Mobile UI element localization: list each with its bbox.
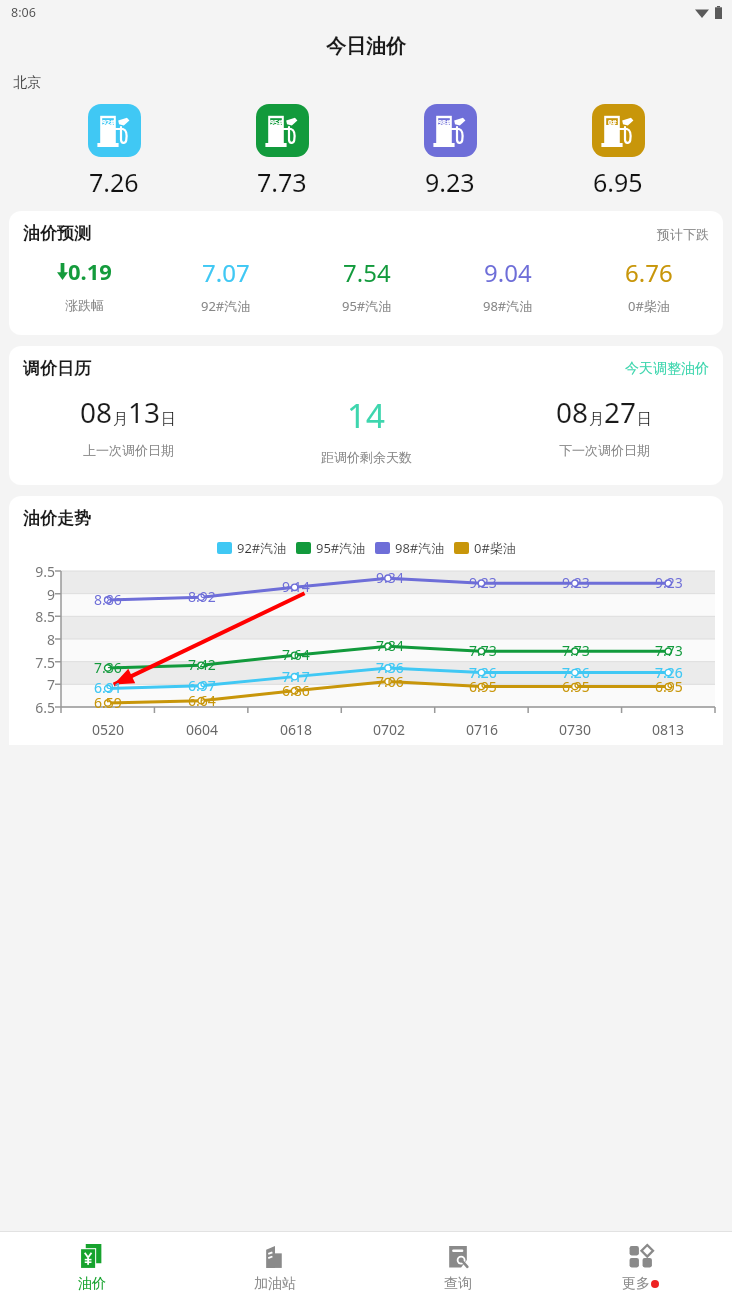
staticText: 7.64 xyxy=(282,645,310,664)
staticText: 6.95 xyxy=(593,165,643,199)
staticText: 油价 xyxy=(78,1275,106,1293)
staticText: 7.36 xyxy=(94,658,122,677)
other: 查询 xyxy=(445,1244,471,1270)
staticText: 7.26 xyxy=(89,165,139,199)
staticText: 月 xyxy=(589,410,604,429)
staticText: 0.19 xyxy=(68,256,112,286)
staticText: 7.26 xyxy=(655,663,683,682)
staticText: 上一次调价日期 xyxy=(83,442,174,458)
staticText: 6.64 xyxy=(188,691,216,710)
staticText: 8.92 xyxy=(188,587,216,606)
staticText: 7.17 xyxy=(282,667,310,686)
staticText: 0#柴油 xyxy=(628,297,670,315)
staticText: 95#汽油 xyxy=(316,539,366,557)
staticText: 7.73 xyxy=(257,165,307,199)
staticText: 7.26 xyxy=(562,663,590,682)
button[interactable]: 0# xyxy=(558,104,678,199)
staticText: 0618 xyxy=(280,720,313,739)
staticText: 6.95 xyxy=(655,677,683,696)
staticText: 距调价剩余天数 xyxy=(321,449,412,465)
button[interactable]: 油价 xyxy=(0,1232,183,1304)
staticText: 0702 xyxy=(373,720,406,739)
staticText: 7.73 xyxy=(562,641,590,660)
staticText: 08 xyxy=(80,393,113,431)
staticText: 0#柴油 xyxy=(474,539,516,557)
staticText: 9.04 xyxy=(484,256,532,289)
staticText: 7.73 xyxy=(655,641,683,660)
staticText: 8 xyxy=(9,630,55,649)
staticText: 0813 xyxy=(652,720,685,739)
staticText: 8:06 xyxy=(11,4,36,21)
staticText: 9.14 xyxy=(282,577,310,596)
staticText: 6.59 xyxy=(94,693,122,712)
other: 更多 xyxy=(628,1244,654,1270)
staticText: 日 xyxy=(161,410,176,429)
button[interactable]: 今天调整油价 xyxy=(625,360,709,378)
staticText: 7.54 xyxy=(343,256,391,289)
staticText: 7.36 xyxy=(376,658,404,677)
staticText: 0730 xyxy=(559,720,592,739)
staticText: 6.86 xyxy=(282,681,310,700)
staticText: 98#汽油 xyxy=(395,539,445,557)
button[interactable]: 98# xyxy=(390,104,510,199)
staticText: 6.91 xyxy=(94,678,122,697)
button[interactable]: 加油站 xyxy=(183,1232,366,1304)
staticText: 加油站 xyxy=(254,1275,296,1293)
staticText: 9.23 xyxy=(469,573,497,592)
staticText: 8.5 xyxy=(9,607,55,626)
staticText: 下一次调价日期 xyxy=(559,442,650,458)
staticText: 9.23 xyxy=(425,165,475,199)
button[interactable]: 查询 xyxy=(366,1232,549,1304)
staticText: 0604 xyxy=(186,720,219,739)
staticText: 27 xyxy=(604,393,637,431)
staticText: 92#汽油 xyxy=(237,539,287,557)
button[interactable]: 更多 xyxy=(549,1232,732,1304)
staticText: 今日油价 xyxy=(326,34,406,59)
staticText: 0# xyxy=(608,118,617,128)
staticText: 月 xyxy=(113,410,128,429)
staticText: 涨跌幅 xyxy=(65,297,104,313)
other: 加油站 xyxy=(262,1244,288,1270)
staticText: 更多 xyxy=(622,1275,650,1293)
staticText: 0716 xyxy=(466,720,499,739)
staticText: 6.5 xyxy=(9,698,55,717)
staticText: 95# xyxy=(270,118,283,128)
staticText: 查询 xyxy=(444,1275,472,1293)
staticText: 9.23 xyxy=(562,573,590,592)
staticText: 7.26 xyxy=(469,663,497,682)
staticText: 9.23 xyxy=(655,573,683,592)
staticText: 9 xyxy=(9,585,55,604)
staticText: 6.95 xyxy=(469,677,497,696)
staticText: 油价走势 xyxy=(23,508,91,529)
staticText: 9.5 xyxy=(9,562,55,581)
staticText: 6.97 xyxy=(188,676,216,695)
staticText: 92#汽油 xyxy=(201,297,251,315)
staticText: 调价日历 xyxy=(23,358,91,379)
staticText: 7.84 xyxy=(376,636,404,655)
staticText: 7.5 xyxy=(9,653,55,672)
button[interactable]: 北京 xyxy=(13,74,41,92)
staticText: 0520 xyxy=(92,720,125,739)
staticText: 7.07 xyxy=(202,256,250,289)
staticText: 6.95 xyxy=(562,677,590,696)
button[interactable]: 95# xyxy=(222,104,342,199)
staticText: 98# xyxy=(438,118,451,128)
staticText: 7.42 xyxy=(188,655,216,674)
staticText: 13 xyxy=(128,393,161,431)
staticText: 日 xyxy=(637,410,652,429)
staticText: 油价预测 xyxy=(23,223,91,244)
staticText: 7.73 xyxy=(469,641,497,660)
staticText: 预计下跌 xyxy=(657,226,709,242)
staticText: 6.76 xyxy=(625,256,673,289)
staticText: 92# xyxy=(102,118,115,128)
staticText: 9.34 xyxy=(376,568,404,587)
staticText: 7 xyxy=(9,675,55,694)
staticText: 8.86 xyxy=(94,590,122,609)
staticText: 98#汽油 xyxy=(483,297,533,315)
staticText: 95#汽油 xyxy=(342,297,392,315)
staticText: 14 xyxy=(347,393,385,438)
staticText: 08 xyxy=(556,393,589,431)
button[interactable]: 92# xyxy=(54,104,174,199)
staticText: 7.06 xyxy=(376,672,404,691)
